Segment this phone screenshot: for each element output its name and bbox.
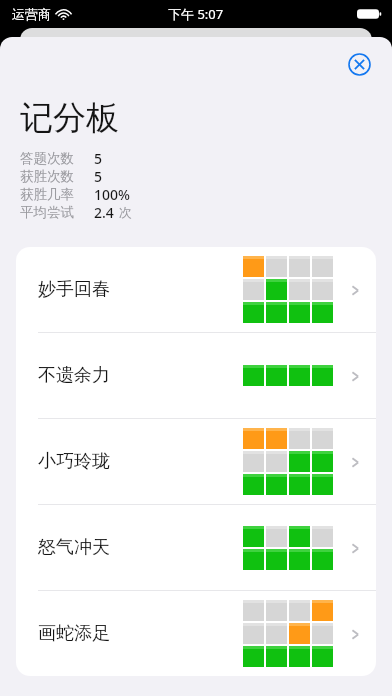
- staticText: 记分板: [20, 97, 119, 139]
- button[interactable]: 小巧玲珑: [16, 419, 376, 504]
- staticText: 运营商: [12, 6, 51, 22]
- button[interactable]: 妙手回春: [16, 247, 376, 332]
- button[interactable]: 不遗余力: [16, 333, 376, 418]
- staticText: 下午 5:07: [168, 5, 224, 23]
- staticText: 次: [119, 204, 132, 220]
- staticText: 小巧玲珑: [38, 450, 110, 473]
- staticText: 5: [94, 149, 103, 167]
- staticText: 获胜几率: [20, 186, 74, 203]
- staticText: 不遗余力: [38, 364, 110, 387]
- staticText: 平均尝试: [20, 204, 74, 221]
- staticText: 答题次数: [20, 150, 74, 167]
- staticText: 2.4: [94, 203, 114, 221]
- button[interactable]: 画蛇添足: [16, 591, 376, 676]
- staticText: 妙手回春: [38, 278, 110, 301]
- staticText: 画蛇添足: [38, 622, 110, 645]
- staticText: 5: [94, 167, 103, 185]
- button[interactable]: 怒气冲天: [16, 505, 376, 590]
- staticText: 获胜次数: [20, 168, 74, 185]
- staticText: 100%: [94, 185, 130, 203]
- staticText: 怒气冲天: [38, 536, 110, 559]
- button[interactable]: 关闭: [348, 53, 371, 76]
